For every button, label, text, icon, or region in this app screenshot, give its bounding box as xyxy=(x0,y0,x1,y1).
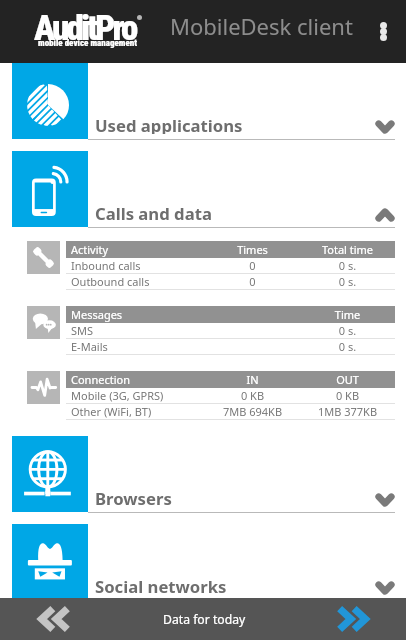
button[interactable]: More options xyxy=(362,0,406,63)
staticText: Other (WiFi, BT) xyxy=(71,404,205,419)
staticText: Social networks xyxy=(95,575,227,595)
staticText: Time xyxy=(300,307,395,322)
staticText: OUT xyxy=(300,372,395,387)
staticText: Activity xyxy=(71,242,205,257)
staticText: 0 KB xyxy=(205,388,300,403)
staticText: Mobile (3G, GPRS) xyxy=(71,388,205,403)
staticText: Used applications xyxy=(95,114,243,134)
staticText: 0 xyxy=(205,258,300,273)
staticText: Outbound calls xyxy=(71,274,205,289)
staticText: mobile device management xyxy=(38,38,138,49)
staticText: IN xyxy=(205,372,300,387)
button[interactable]: Next day xyxy=(298,598,406,640)
button[interactable]: Previous day xyxy=(0,598,108,640)
staticText: Times xyxy=(205,242,300,257)
button[interactable]: Browsers xyxy=(0,436,406,524)
staticText: 0 s. xyxy=(300,339,395,354)
button[interactable]: Used applications xyxy=(0,63,406,151)
staticText: Total time xyxy=(300,242,395,257)
staticText: Browsers xyxy=(95,487,172,507)
staticText: Inbound calls xyxy=(71,258,205,273)
staticText: 0 s. xyxy=(300,258,395,273)
staticText: 0 s. xyxy=(300,323,395,338)
staticText: MobileDesk client xyxy=(170,11,353,41)
staticText: 0 KB xyxy=(300,388,395,403)
staticText: AuditPro xyxy=(34,8,136,49)
staticText: 7MB 694KB xyxy=(205,404,300,419)
staticText: 0 xyxy=(205,274,300,289)
staticText: Data for today xyxy=(163,611,246,628)
staticText: Calls and data xyxy=(95,202,212,222)
button[interactable]: Calls and data xyxy=(0,151,406,239)
staticText: SMS xyxy=(71,323,205,338)
staticText: E-Mails xyxy=(71,339,205,354)
staticText: 0 s. xyxy=(300,274,395,289)
staticText: 1MB 377KB xyxy=(300,404,395,419)
staticText: Messages xyxy=(71,307,205,322)
button[interactable]: Social networks xyxy=(0,524,406,599)
staticText: Connection xyxy=(71,372,205,387)
